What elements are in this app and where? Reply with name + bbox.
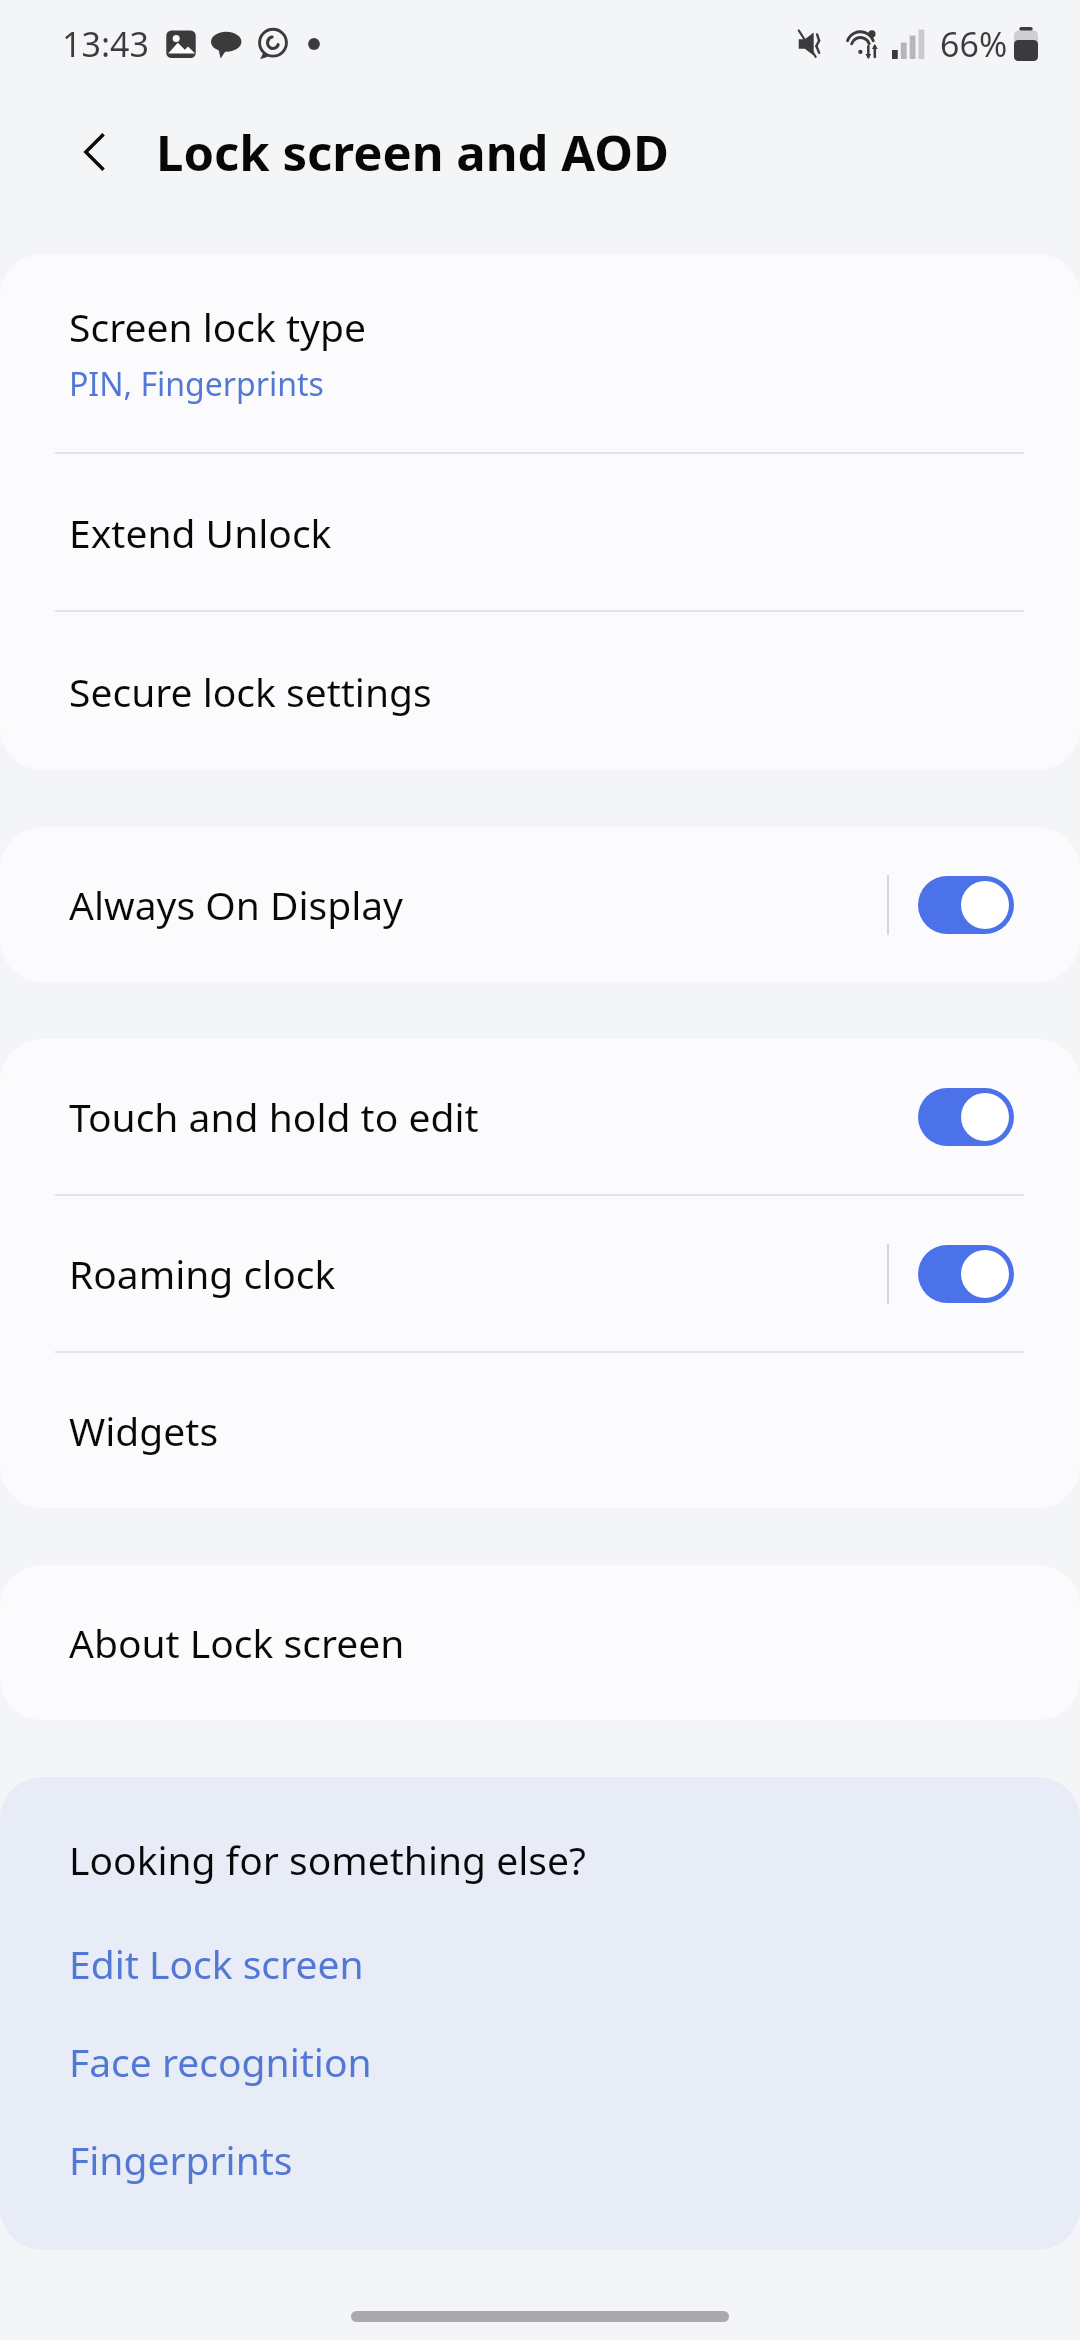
button[interactable]: Touch and hold to edit toggle, on [918,1088,1014,1146]
button[interactable]: Always On Display [0,827,1080,982]
button[interactable]: Screen lock type [0,254,1080,452]
button[interactable]: Face recognition [0,2012,1080,2110]
staticText: 13:43 [62,21,149,67]
staticText: PIN, Fingerprints [69,362,324,406]
staticText: Touch and hold to edit [69,1090,918,1143]
staticText: Lock screen and AOD [156,119,669,186]
button[interactable]: Edit Lock screen [0,1914,1080,2012]
button[interactable]: Extend Unlock [0,454,1080,610]
button[interactable]: About Lock screen [0,1565,1080,1720]
staticText: Fingerprints [69,2133,293,2186]
staticText: Extend Unlock [69,506,332,559]
button[interactable]: Widgets [0,1353,1080,1508]
button[interactable]: Touch and hold to edit [0,1039,1080,1194]
button[interactable]: Back [60,117,130,187]
staticText: Roaming clock [69,1247,887,1300]
staticText: Secure lock settings [69,665,432,718]
staticText: Widgets [69,1404,219,1457]
staticText: Looking for something else? [69,1833,586,1886]
button[interactable]: Roaming clock [0,1196,1080,1351]
button[interactable]: Secure lock settings [0,612,1080,770]
staticText: 66% [940,21,1008,67]
staticText: Always On Display [69,878,887,931]
staticText: Screen lock type [69,300,366,353]
button[interactable]: Fingerprints [0,2110,1080,2208]
button[interactable]: Roaming clock toggle, on [918,1245,1014,1303]
staticText: About Lock screen [69,1616,405,1669]
staticText: Face recognition [69,2035,372,2088]
staticText: Edit Lock screen [69,1937,364,1990]
button[interactable]: Always On Display toggle, on [918,876,1014,934]
